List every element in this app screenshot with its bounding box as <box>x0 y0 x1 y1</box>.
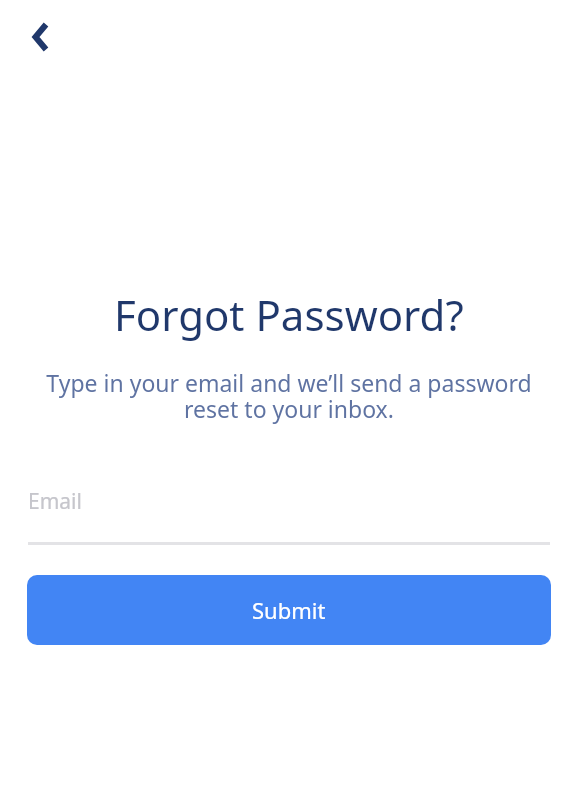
staticText: Type in your email and we’ll send a pass… <box>46 367 532 425</box>
staticText: Email <box>28 487 82 516</box>
staticText: Submit <box>252 595 326 625</box>
button[interactable] <box>17 15 61 59</box>
staticText: Forgot Password? <box>114 286 464 343</box>
button[interactable]: Submit <box>27 575 551 645</box>
